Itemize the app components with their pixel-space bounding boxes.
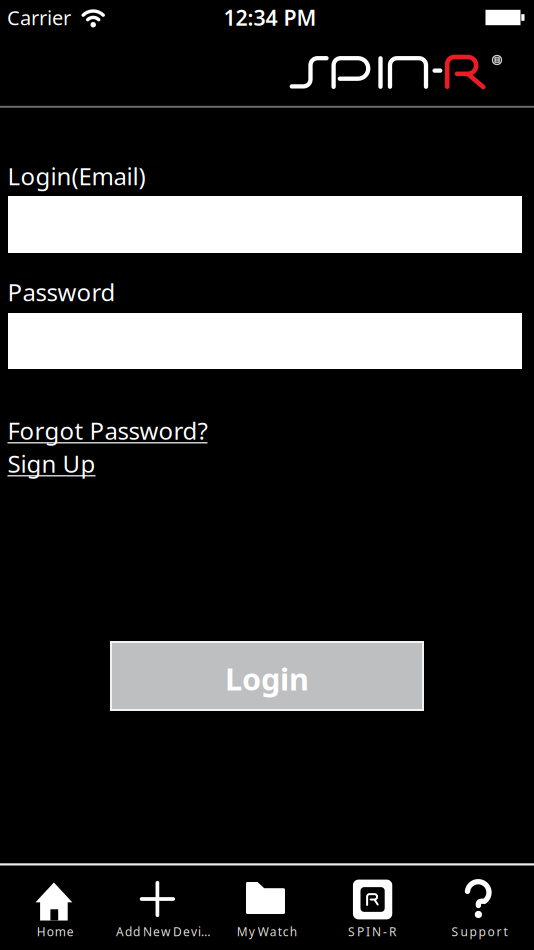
staticText: 12:34 PM (223, 3, 316, 32)
button[interactable]: Home (0, 862, 107, 950)
staticText: Login (225, 658, 309, 699)
staticText: A d d N e w D e v i… (116, 923, 210, 939)
button[interactable]: Add New Device (107, 862, 214, 950)
button[interactable]: Sign Up (7, 448, 95, 479)
button[interactable]: Login (110, 641, 424, 711)
staticText: S P I N - R (348, 923, 396, 939)
button[interactable]: SPIN-R (320, 862, 427, 950)
staticText: Carrier (7, 4, 71, 31)
staticText: Forgot Password? (7, 415, 207, 446)
staticText: H o m e (37, 923, 74, 939)
staticText: Password (7, 276, 115, 308)
staticText: S u p p o r t (451, 923, 507, 939)
staticText: M y W a t c h (237, 923, 297, 939)
staticText: Sign Up (7, 448, 95, 479)
button[interactable]: Forgot Password? (7, 415, 207, 446)
staticText: Login(Email) (7, 160, 145, 192)
button[interactable]: Support (427, 862, 534, 950)
button[interactable]: My Watch (214, 862, 320, 950)
